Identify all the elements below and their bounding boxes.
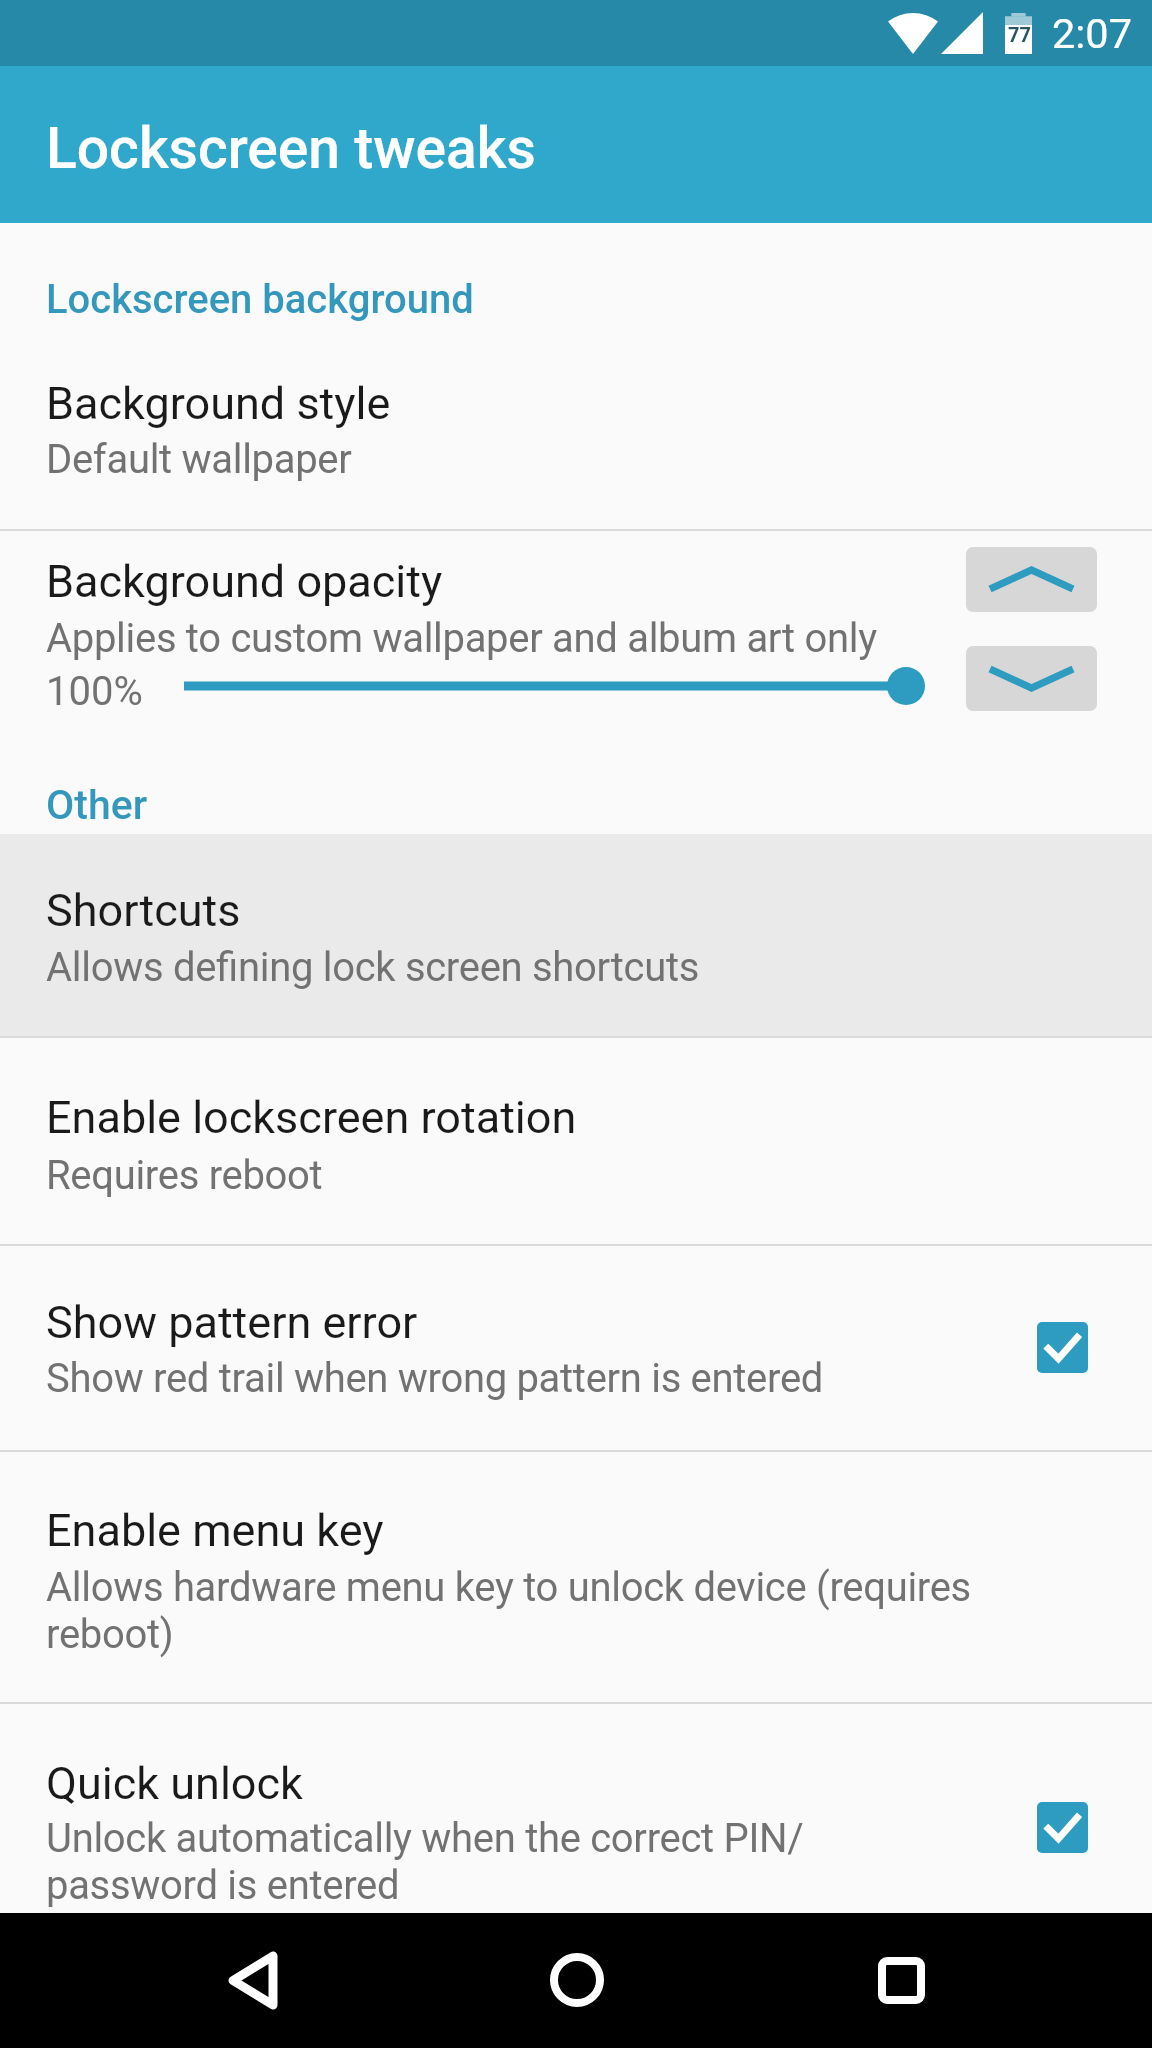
staticText: Enable menu key bbox=[46, 1504, 384, 1557]
staticText: Lockscreen tweaks bbox=[46, 115, 536, 182]
staticText: Requires reboot bbox=[46, 1152, 323, 1199]
button[interactable]: Decrease opacity bbox=[966, 646, 1097, 711]
button[interactable]: Increase opacity bbox=[966, 547, 1097, 612]
staticText: Show pattern error bbox=[46, 1296, 418, 1349]
staticText: 100% bbox=[46, 668, 143, 715]
staticText: Background style bbox=[46, 377, 391, 430]
button[interactable] bbox=[0, 1452, 1152, 1702]
button[interactable]: Recent apps bbox=[841, 1920, 961, 2040]
staticText: Enable lockscreen rotation bbox=[46, 1091, 577, 1144]
button[interactable] bbox=[0, 1038, 1152, 1244]
button[interactable] bbox=[0, 834, 1152, 1036]
staticText: 2:07 bbox=[1052, 9, 1133, 58]
button[interactable] bbox=[0, 1704, 1152, 1913]
staticText: Show red trail when wrong pattern is ent… bbox=[46, 1355, 824, 1402]
staticText: Other bbox=[46, 781, 148, 829]
button[interactable] bbox=[0, 531, 1152, 740]
staticText: Allows defining lock screen shortcuts bbox=[46, 944, 700, 991]
button[interactable]: Home bbox=[517, 1920, 637, 2040]
staticText: Shortcuts bbox=[46, 884, 241, 937]
staticText: 77 bbox=[1008, 23, 1031, 46]
button[interactable]: Toggle setting bbox=[1037, 1322, 1088, 1373]
button[interactable] bbox=[0, 330, 1152, 529]
staticText: Lockscreen background bbox=[46, 276, 474, 323]
staticText: Default wallpaper bbox=[46, 436, 352, 483]
button[interactable]: Toggle setting bbox=[1037, 1802, 1088, 1853]
staticText: Allows hardware menu key to unlock devic… bbox=[46, 1564, 1036, 1658]
staticText: Quick unlock bbox=[46, 1757, 303, 1810]
staticText: Applies to custom wallpaper and album ar… bbox=[46, 615, 877, 662]
button[interactable]: Back bbox=[193, 1920, 313, 2040]
staticText: Background opacity bbox=[46, 555, 443, 608]
staticText: Unlock automatically when the correct PI… bbox=[46, 1815, 926, 1909]
button[interactable] bbox=[0, 1246, 1152, 1450]
